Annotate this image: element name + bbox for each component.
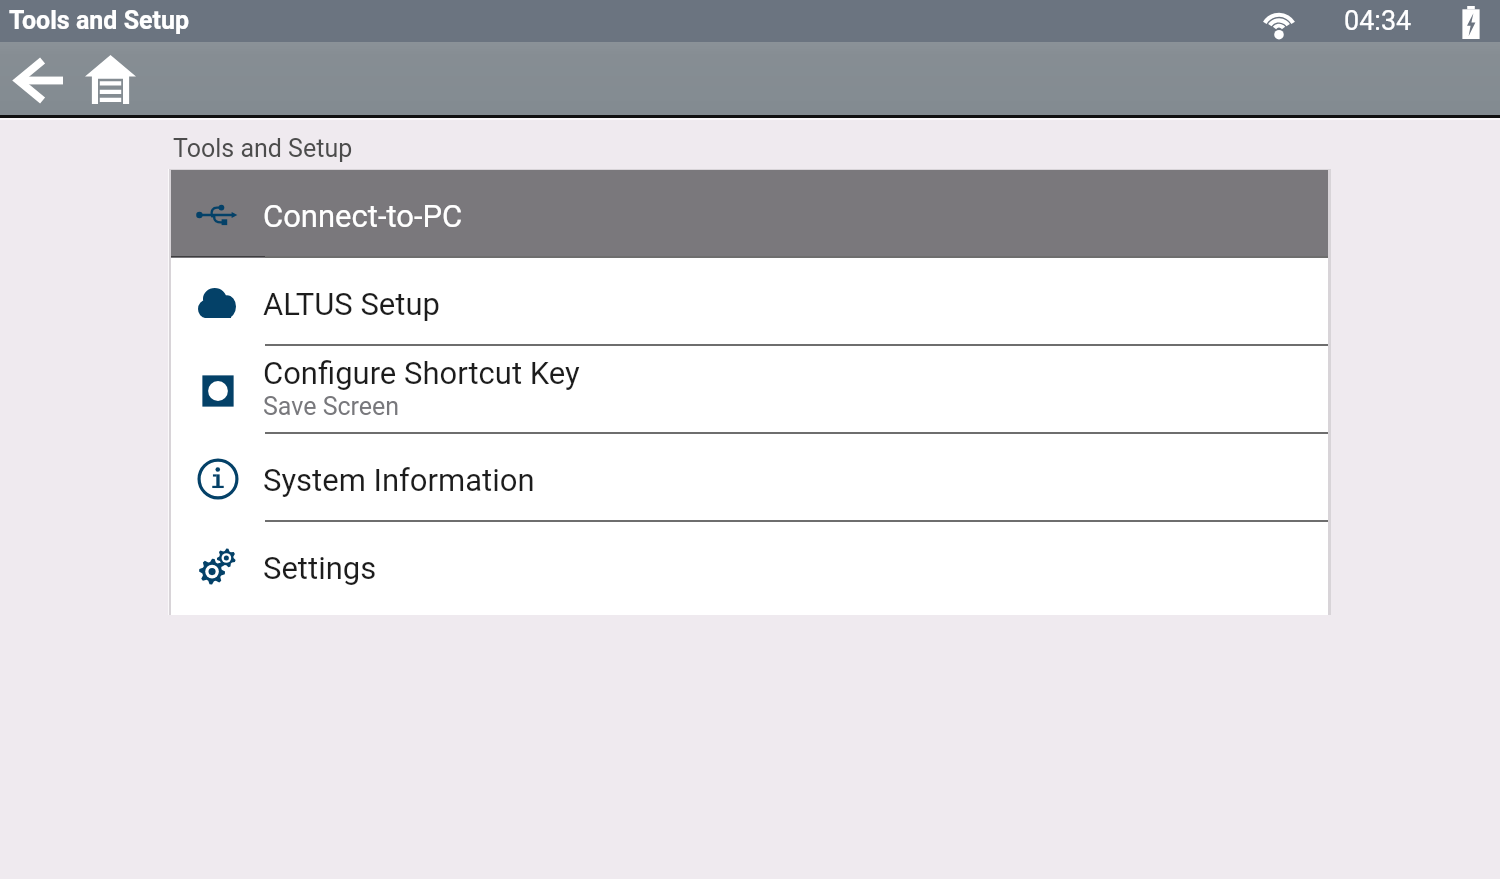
staticText: ALTUS Setup bbox=[263, 286, 440, 322]
staticText: Configure Shortcut Key bbox=[263, 355, 580, 391]
staticText: Tools and Setup bbox=[9, 6, 190, 35]
other: Battery charging bbox=[1461, 6, 1481, 39]
button[interactable]: System Information bbox=[171, 434, 1328, 520]
other: Wi-Fi bbox=[1261, 5, 1297, 38]
button[interactable]: Back bbox=[0, 42, 74, 115]
staticText: Tools and Setup bbox=[173, 134, 353, 163]
staticText: Settings bbox=[263, 550, 377, 586]
button[interactable]: Connect-to-PC bbox=[171, 170, 1328, 256]
staticText: Save Screen bbox=[263, 392, 400, 421]
staticText: 04:34 bbox=[1344, 5, 1412, 37]
button[interactable]: Settings bbox=[171, 522, 1328, 608]
staticText: System Information bbox=[263, 462, 535, 498]
staticText: Connect-to-PC bbox=[263, 198, 463, 234]
button[interactable]: ALTUS Setup bbox=[171, 258, 1328, 344]
button[interactable]: Configure Shortcut Key bbox=[171, 346, 1328, 432]
button[interactable]: Home bbox=[74, 42, 146, 115]
